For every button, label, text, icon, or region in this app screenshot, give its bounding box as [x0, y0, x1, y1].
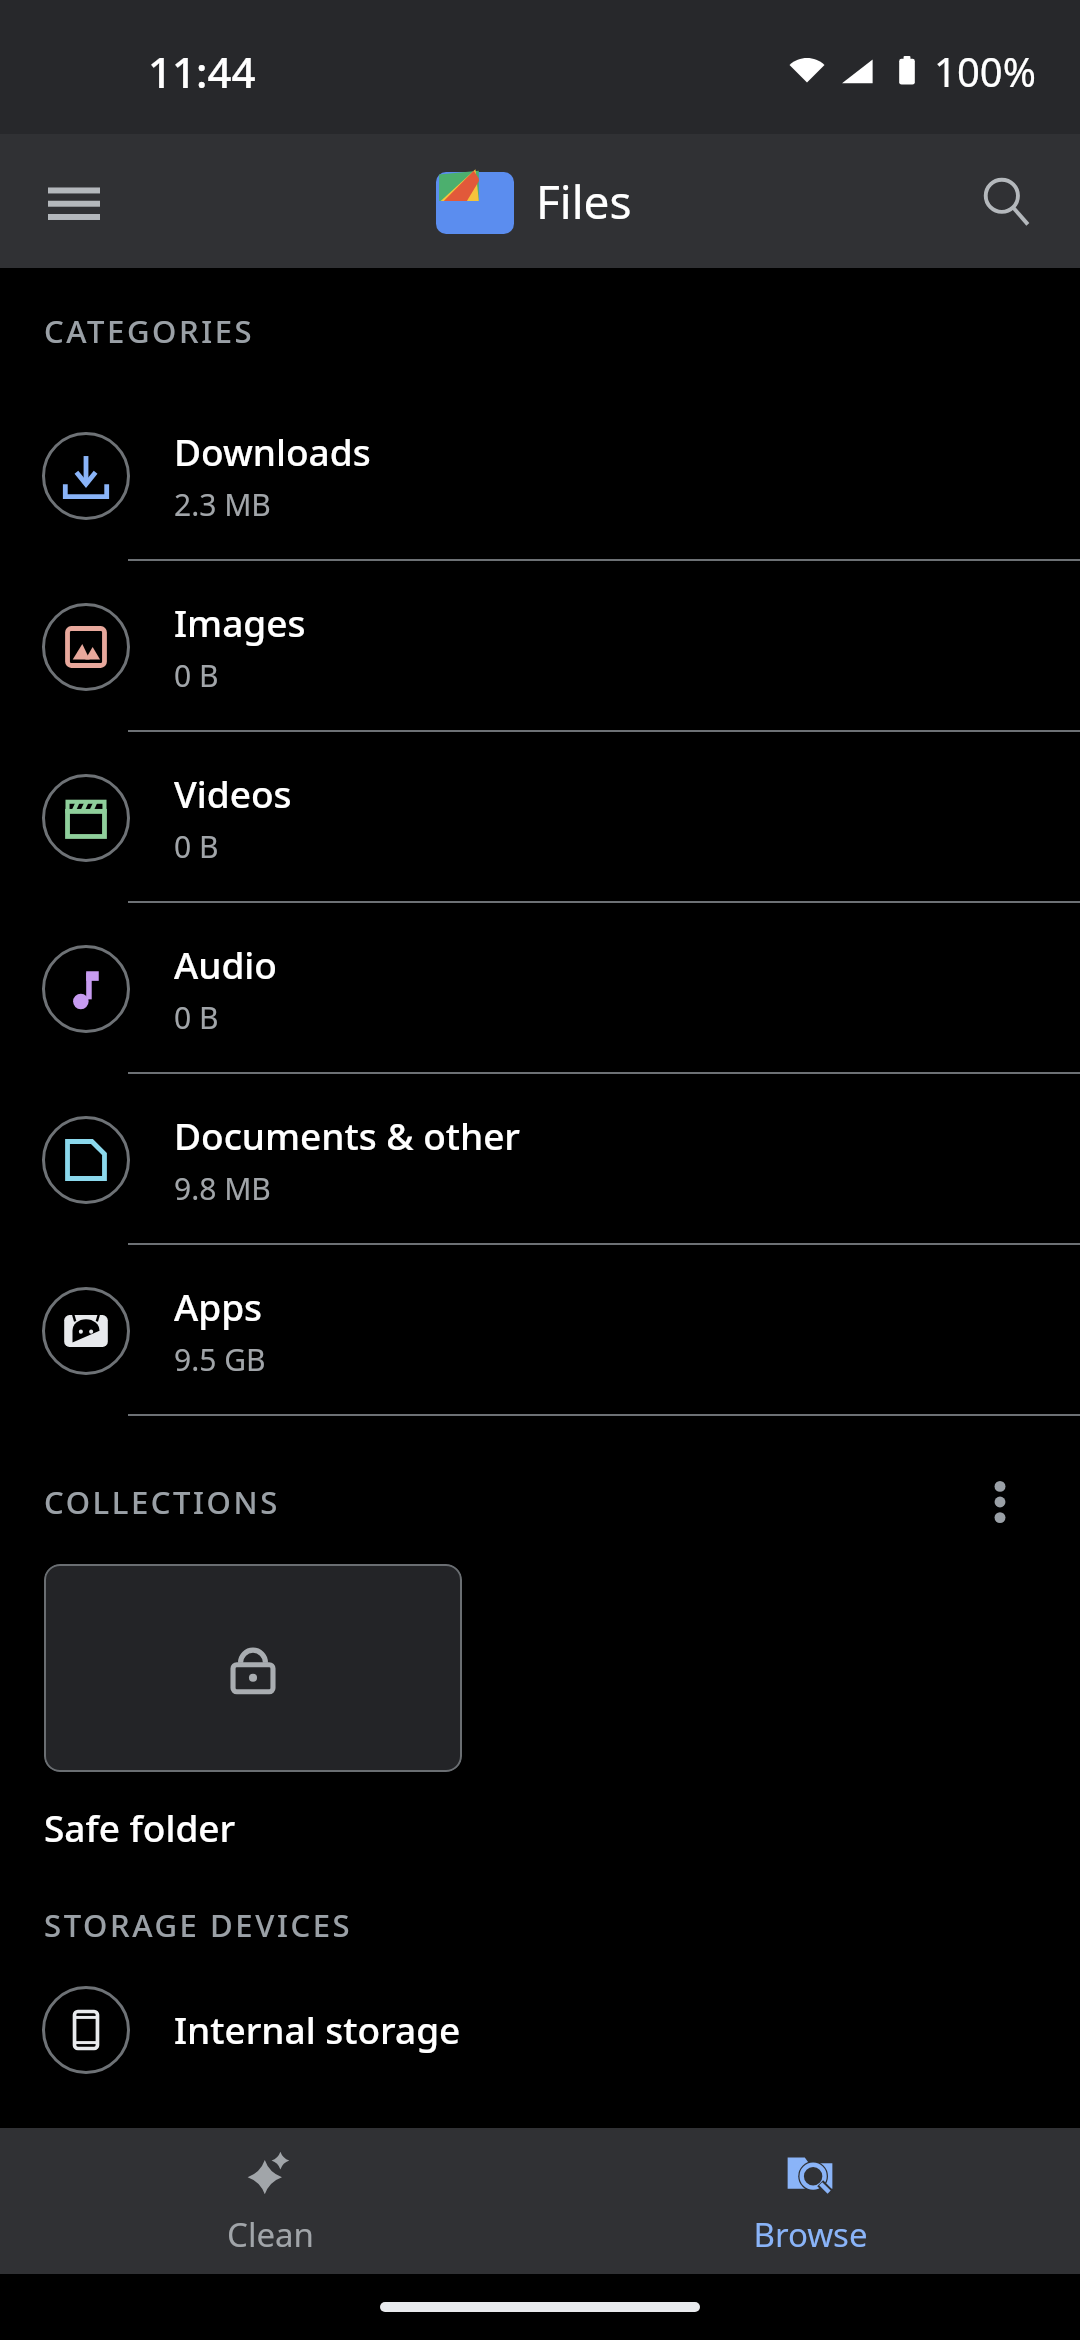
button[interactable]: Videos	[0, 732, 1080, 903]
staticText: 0 B	[174, 826, 219, 867]
staticText: 11:44	[148, 43, 256, 100]
button[interactable]: Audio	[0, 903, 1080, 1074]
staticText: 9.8 MB	[174, 1168, 271, 1209]
button[interactable]: Search	[962, 157, 1050, 245]
staticText: CATEGORIES	[44, 310, 255, 352]
staticText: Browse	[753, 2212, 868, 2257]
staticText: 0 B	[174, 655, 219, 696]
button[interactable]: More options	[954, 1456, 1046, 1548]
staticText: COLLECTIONS	[44, 1481, 280, 1523]
button[interactable]: Downloads	[0, 390, 1080, 561]
staticText: Safe folder	[44, 1802, 236, 1852]
staticText: Apps	[174, 1281, 263, 1331]
staticText: Downloads	[174, 426, 371, 476]
staticText: Audio	[174, 939, 277, 989]
button[interactable]: Documents & other	[0, 1074, 1080, 1245]
staticText: Clean	[227, 2212, 314, 2257]
button[interactable]: Open navigation menu	[30, 157, 118, 245]
staticText: 2.3 MB	[174, 484, 271, 525]
staticText: 0 B	[174, 997, 219, 1038]
staticText: STORAGE DEVICES	[44, 1904, 353, 1946]
button[interactable]: Clean	[0, 2128, 540, 2274]
staticText: Images	[174, 597, 306, 647]
button[interactable]: Images	[0, 561, 1080, 732]
button[interactable]: Apps	[0, 1245, 1080, 1416]
staticText: Videos	[174, 768, 292, 818]
staticText: Files	[536, 170, 632, 233]
button[interactable]: Browse	[540, 2128, 1080, 2274]
button[interactable]: Internal storage	[0, 1986, 1080, 2146]
staticText: Documents & other	[174, 1110, 521, 1160]
staticText: 100%	[934, 44, 1036, 98]
staticText: 9.5 GB	[174, 1339, 266, 1380]
staticText: Internal storage	[174, 2004, 461, 2054]
button[interactable]	[44, 1564, 462, 1772]
